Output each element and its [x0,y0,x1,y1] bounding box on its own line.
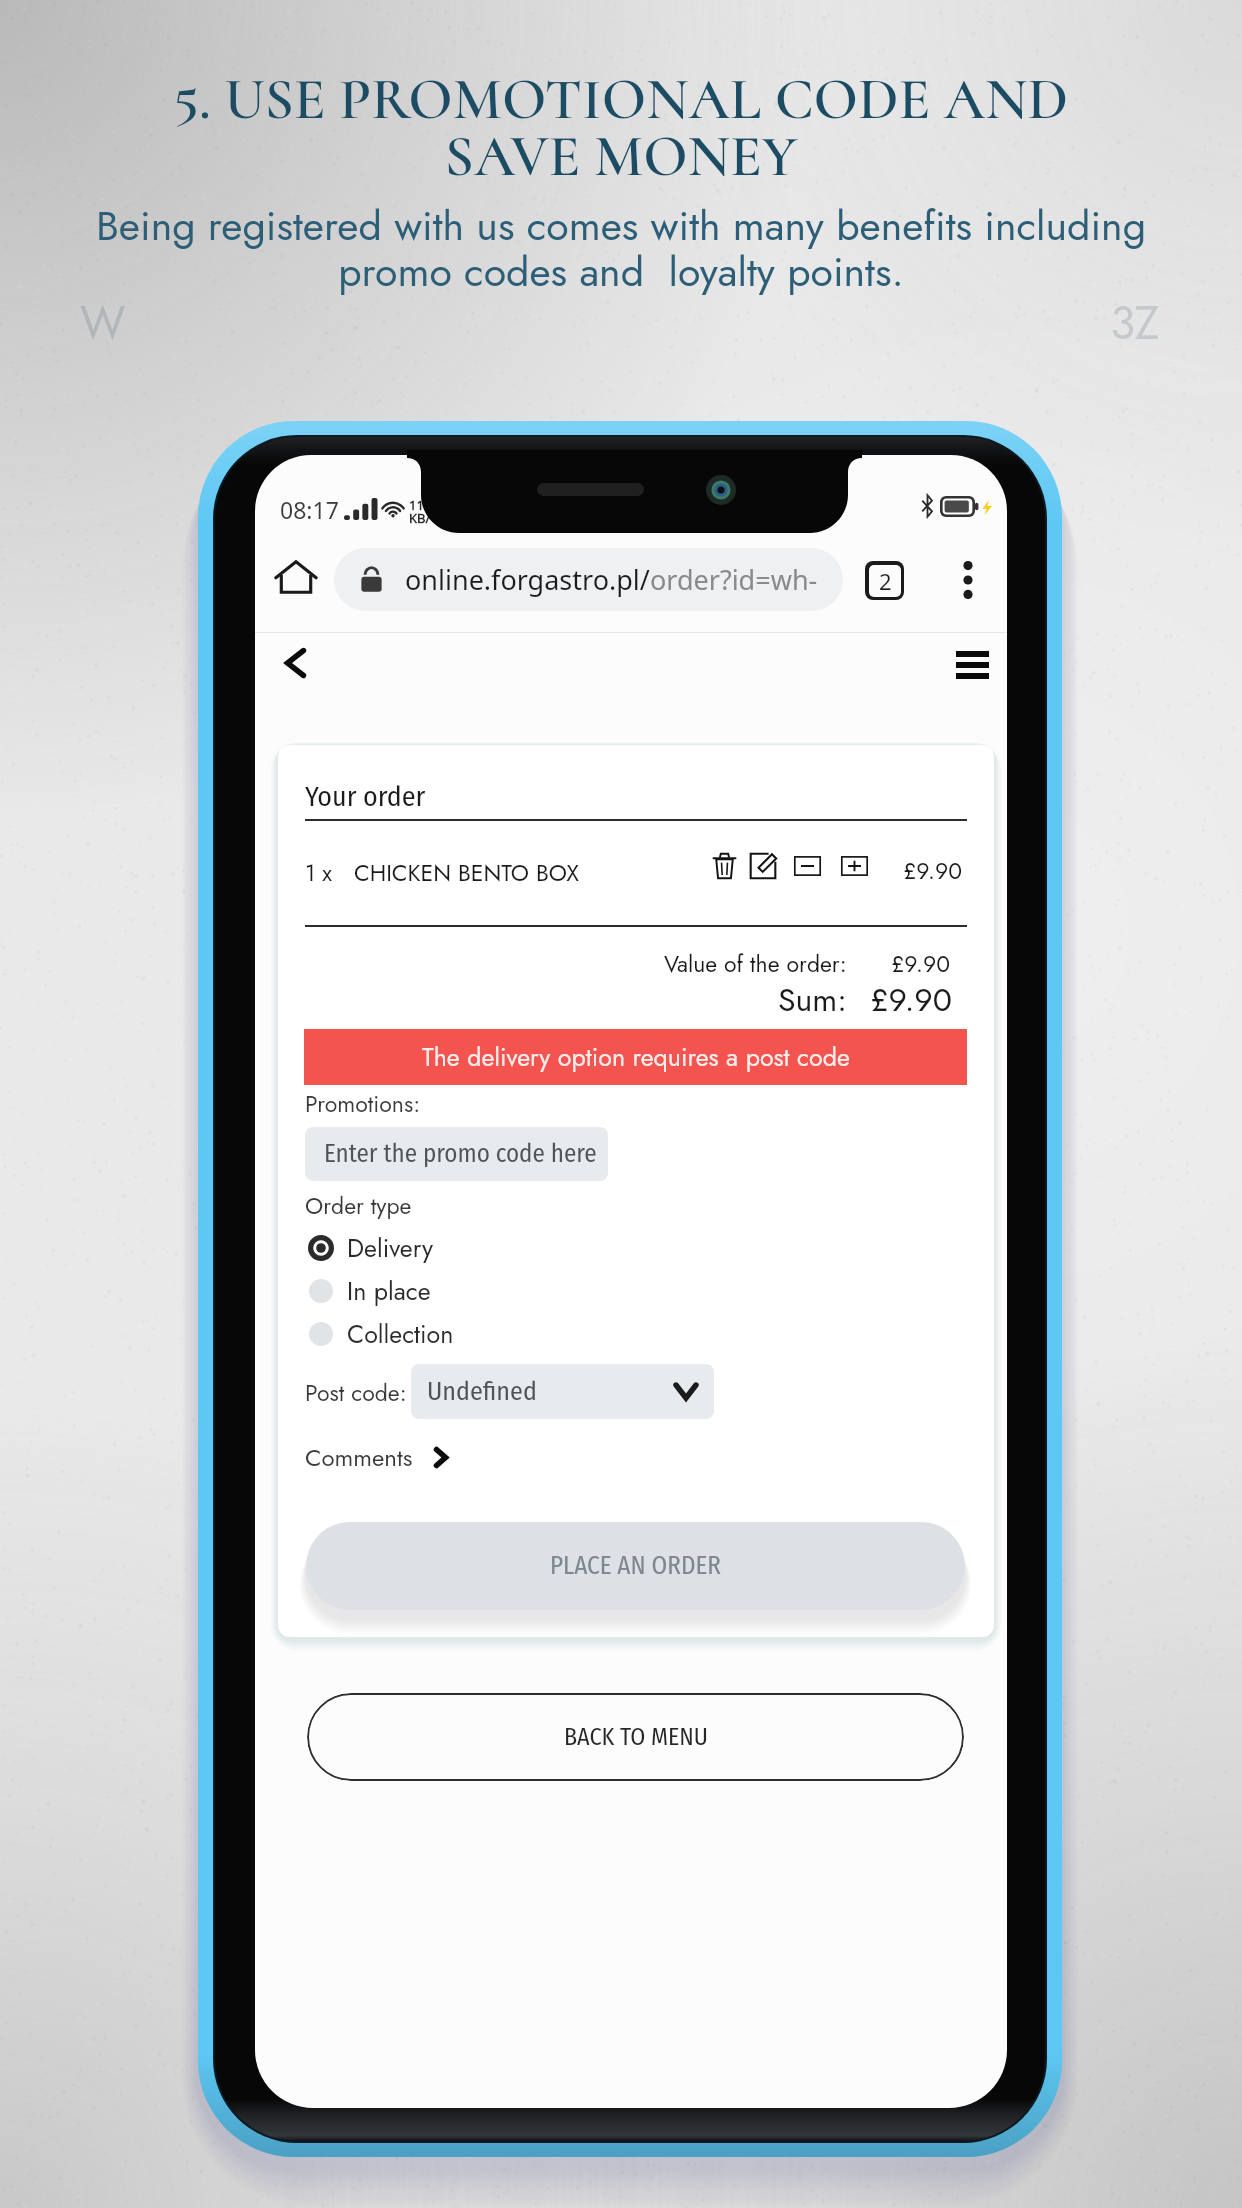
button[interactable]: Collection [308,1314,454,1354]
button[interactable]: Home [265,546,327,608]
staticText: Promotions: [305,1087,421,1120]
button[interactable]: PLACE AN ORDER [306,1522,965,1610]
staticText: £9.90 [870,977,952,1023]
button[interactable]: online.forgastro.pl/ [334,548,843,611]
button[interactable]: Back [260,628,330,698]
button[interactable]: Menu [937,630,1007,700]
staticText: Collection [347,1316,454,1352]
staticText: order?id=wh- [650,561,818,598]
button[interactable]: Delete item [704,846,744,886]
button[interactable]: Enter the promo code here [305,1127,608,1181]
button[interactable]: More options [939,551,997,609]
staticText: 1 x [305,856,332,889]
button[interactable]: Delivery [308,1228,433,1268]
staticText: Undefined [427,1376,537,1407]
staticText: CHICKEN BENTO BOX [354,856,579,889]
staticText: Sum: [778,977,847,1023]
staticText: Value of the order: [664,947,847,980]
staticText: Post code: [305,1376,407,1409]
button[interactable]: Undefined [411,1364,714,1419]
staticText: W [80,290,126,356]
staticText: 2 [879,566,892,596]
staticText: BACK TO MENU [564,1723,708,1752]
staticText: 11 KB/ [409,496,431,527]
staticText: £9.90 [903,854,962,887]
staticText: Your order [305,780,426,814]
button[interactable]: BACK TO MENU [307,1693,964,1781]
staticText: In place [347,1273,431,1309]
staticText: Enter the promo code here [324,1139,597,1169]
staticText: SAVE MONEY [0,121,1242,191]
staticText: The delivery option requires a post code [422,1039,850,1075]
button[interactable]: Tabs [855,551,913,609]
staticText: 08:17 [280,494,339,525]
staticText: 5. USE PROMOTIONAL CODE AND [0,64,1242,134]
button[interactable]: Increase quantity [836,848,872,884]
staticText: Comments [305,1440,413,1475]
staticText: Delivery [347,1230,433,1266]
staticText: PLACE AN ORDER [550,1551,721,1581]
staticText: 3Z [1110,290,1160,356]
staticText: £9.90 [891,947,950,980]
staticText: Being registered with us comes with many… [0,196,1242,255]
staticText: online.forgastro.pl/ [405,561,650,598]
button[interactable]: Comments [299,1435,453,1479]
staticText: promo codes and loyalty points. [0,242,1242,301]
staticText: Order type [305,1189,412,1222]
button[interactable]: In place [308,1271,431,1311]
button[interactable]: Decrease quantity [789,848,825,884]
button[interactable]: The delivery option requires a post code [304,1029,967,1085]
button[interactable]: Edit item [743,846,783,886]
